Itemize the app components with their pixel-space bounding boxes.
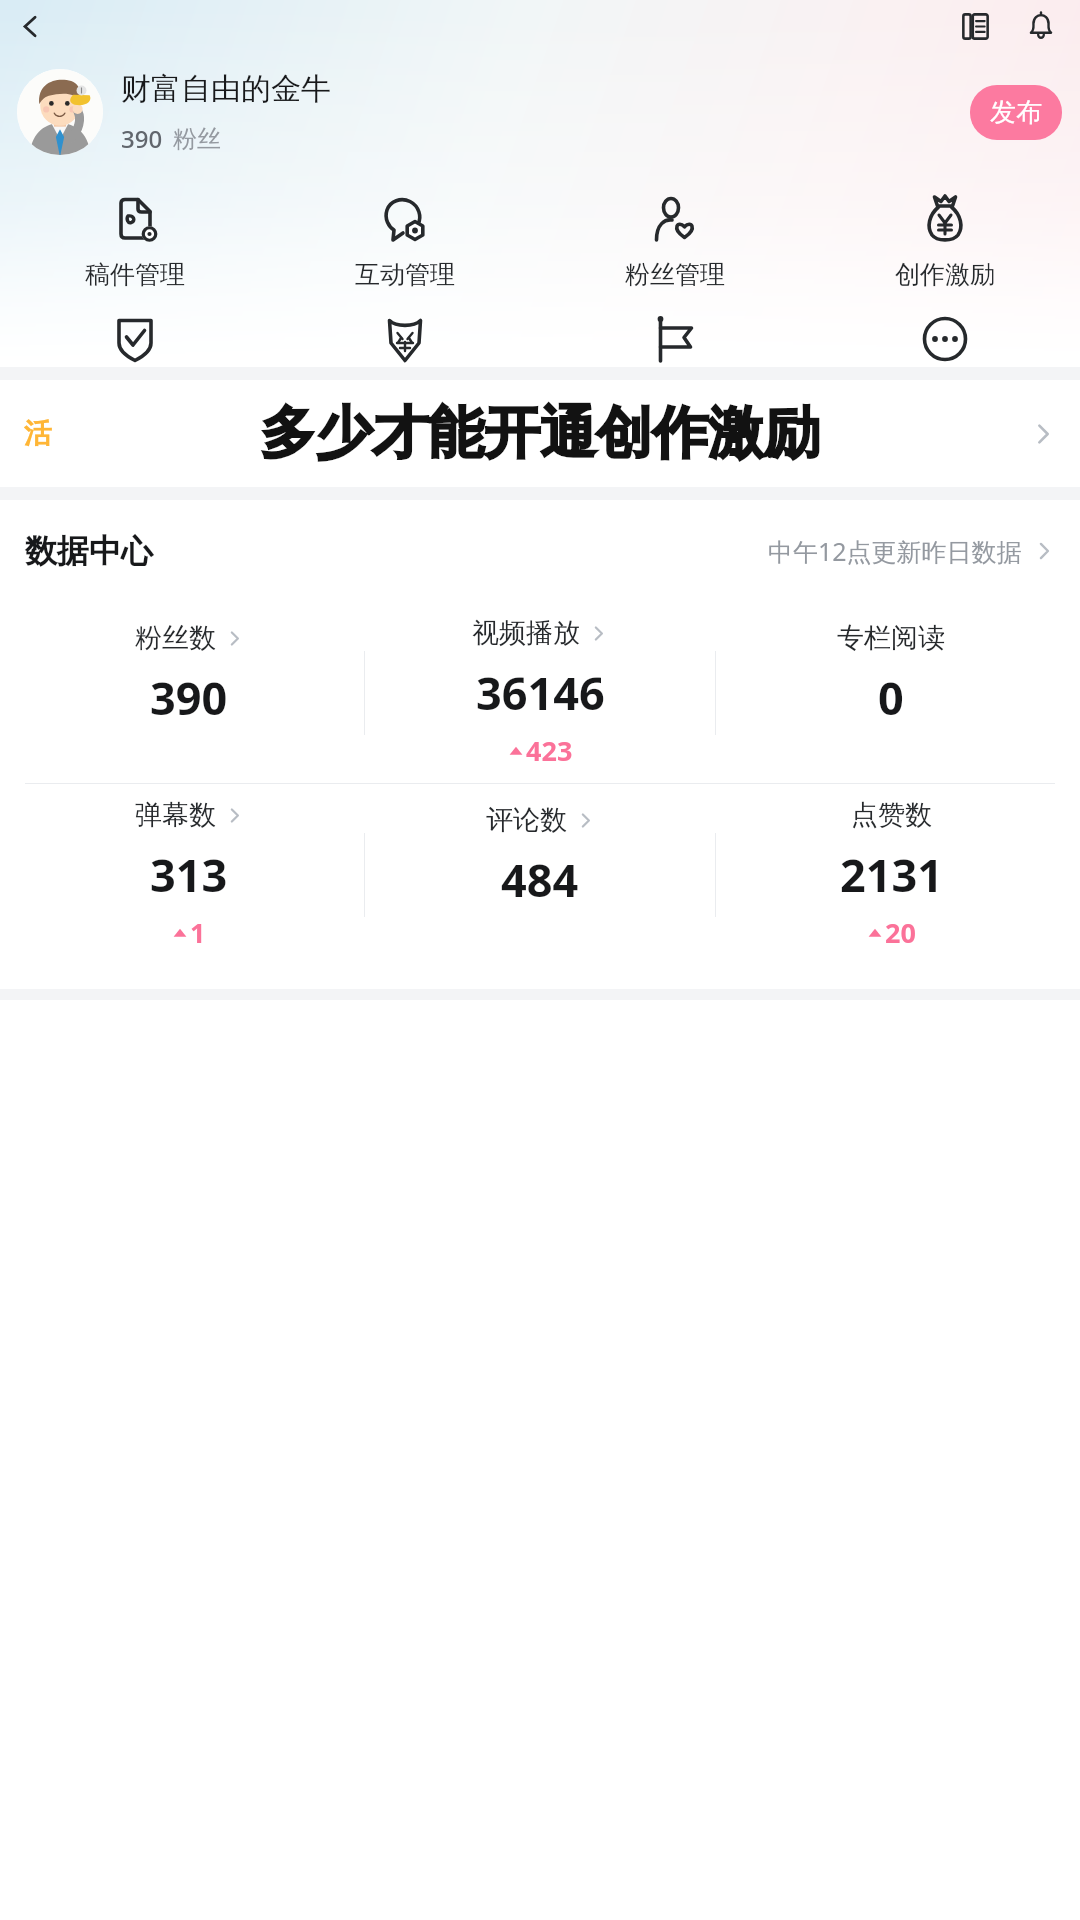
staticText: 36146 (476, 662, 605, 723)
staticText: 20 (885, 914, 916, 951)
button[interactable]: Notifications (1018, 3, 1064, 49)
staticText: 粉丝数 (135, 621, 216, 655)
staticText: 粉丝 (173, 124, 221, 154)
staticText: 484 (501, 849, 579, 910)
button[interactable]: 打卡挑战 (0, 311, 270, 367)
button[interactable] (17, 69, 103, 155)
button[interactable]: 互动管理 (270, 188, 540, 293)
staticText: 多少才能开通创作激励 (263, 401, 823, 472)
staticText: 313 (150, 844, 228, 905)
staticText: 评论数 (486, 803, 567, 837)
staticText: 财富自由的金牛 (121, 70, 331, 108)
staticText: 多少才能开通创作激励 (257, 401, 817, 472)
staticText: 多少才能开通创作激励 (256, 398, 816, 469)
staticText: 视频播放 (472, 616, 580, 650)
staticText: 互动管理 (355, 259, 455, 290)
button[interactable]: 弹幕数 (14, 784, 364, 965)
staticText: 390 (150, 667, 228, 728)
button[interactable]: 粉丝数 (14, 602, 364, 783)
staticText: 数据中心 (25, 531, 153, 571)
button[interactable]: 粉丝管理 (540, 188, 810, 293)
button[interactable]: 评论数 (365, 784, 715, 965)
button[interactable]: 有奖活动 (540, 311, 810, 367)
staticText: 稿件管理 (85, 259, 185, 290)
staticText: 多少才能开通创作激励 (260, 394, 820, 465)
staticText: 点赞数 (851, 798, 932, 832)
staticText: 多少才能开通创作激励 (260, 402, 820, 473)
staticText: 2131 (840, 844, 943, 905)
staticText: 创作激励 (895, 259, 995, 290)
staticText: 多少才能开通创作激励 (263, 395, 823, 466)
staticText: 1 (190, 914, 206, 951)
staticText: 中午12点更新昨日数据 (768, 534, 1022, 568)
staticText: 多少才能开通创作激励 (264, 398, 824, 469)
button[interactable]: 发布 (970, 85, 1062, 140)
button[interactable]: 视频播放 (365, 602, 715, 783)
button[interactable]: Creator handbook (952, 3, 998, 49)
staticText: 0 (878, 667, 904, 728)
button[interactable]: 专栏阅读 (716, 602, 1066, 783)
staticText: 423 (526, 732, 573, 769)
button[interactable]: 中午12点更新昨日数据 (768, 534, 1055, 568)
button[interactable]: 活 (0, 380, 1080, 487)
button[interactable]: Back (7, 3, 53, 49)
staticText: 多少才能开通创作激励 (260, 398, 820, 469)
button[interactable]: 财富自由的金牛 (121, 70, 970, 155)
staticText: 弹幕数 (135, 798, 216, 832)
button[interactable]: 点赞数 (716, 784, 1066, 965)
button[interactable]: 更多功能 (810, 311, 1080, 367)
staticText: 发布 (990, 96, 1042, 129)
button[interactable]: 创作激励 (810, 188, 1080, 293)
staticText: 活 (24, 416, 52, 451)
staticText: 粉丝管理 (625, 259, 725, 290)
button[interactable]: UP主推荐 (270, 311, 540, 367)
staticText: 390 (121, 122, 163, 155)
button[interactable]: 稿件管理 (0, 188, 270, 293)
staticText: 专栏阅读 (837, 621, 945, 655)
staticText: 多少才能开通创作激励 (257, 395, 817, 466)
